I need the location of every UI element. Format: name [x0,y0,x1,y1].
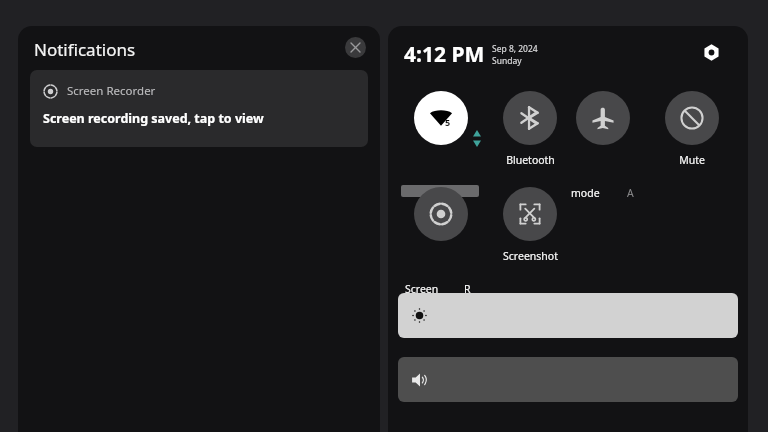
staticText: Sunday [492,55,522,67]
staticText: Screen [405,282,439,296]
staticText: 4:12 PM [404,40,485,69]
button[interactable]: Wi-Fi [414,91,468,145]
staticText: R [464,282,471,296]
staticText: Screen recording saved, tap to view [43,110,264,127]
button[interactable]: Screen recorder [414,187,468,241]
button[interactable] [503,187,557,241]
button[interactable]: Volume [398,357,738,402]
button[interactable] [503,91,557,145]
staticText: Mute [679,153,705,167]
button[interactable]: Airplane mode [576,91,630,145]
staticText: Screenshot [503,249,558,263]
button[interactable] [665,91,719,145]
staticText: Notifications [34,38,136,61]
button[interactable]: Settings [699,40,723,64]
staticText: A [627,186,634,200]
button[interactable]: Screen Recorder [30,70,368,147]
staticText: 5 [445,116,451,128]
button[interactable]: Brightness [398,293,738,338]
staticText: mode [571,186,600,200]
staticText: Screen Recorder [67,83,156,99]
button[interactable]: Clear all notifications [345,37,366,58]
staticText: Sep 8, 2024 [492,43,538,55]
staticText: Bluetooth [506,153,555,167]
